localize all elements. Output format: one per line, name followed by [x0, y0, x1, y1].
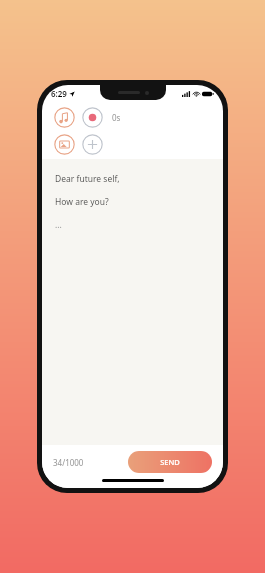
staticText: Dear future self, — [55, 173, 120, 185]
button[interactable]: SEND — [128, 451, 212, 473]
button[interactable]: Record audio — [82, 107, 103, 128]
staticText: How are you? — [55, 196, 109, 208]
button[interactable]: Add attachment — [82, 134, 103, 155]
staticText: ... — [55, 219, 62, 231]
staticText: 0s — [112, 112, 121, 123]
button[interactable]: Add music — [54, 107, 75, 128]
button[interactable]: Add photo — [54, 134, 75, 155]
staticText: SEND — [160, 457, 180, 467]
staticText: 34/1000 — [53, 457, 84, 468]
staticText: 6:29 — [51, 88, 67, 99]
